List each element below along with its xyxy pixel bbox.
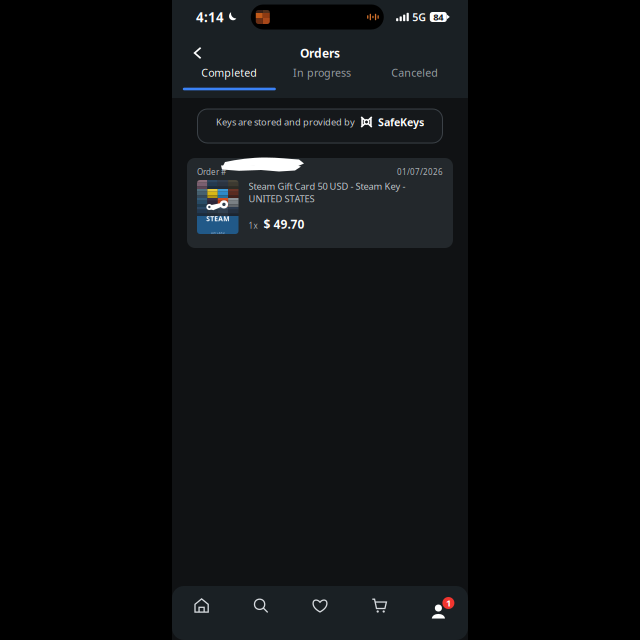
staticText: Steam Gift Card 50 USD - Steam Key - [248,180,405,192]
staticText: In progress [293,66,351,80]
staticText: STEAM [206,214,229,223]
button[interactable]: Favorites [290,586,350,640]
staticText: SafeKeys [378,115,424,129]
staticText: 1x [248,220,257,231]
button[interactable]: Keys are stored and provided by [197,109,442,143]
staticText: UNITED STATES [248,192,314,205]
staticText: Canceled [391,66,438,80]
button[interactable]: In progress [276,65,368,98]
staticText: Keys are stored and provided by [216,116,355,128]
staticText: GIFT CARD [211,231,225,235]
staticText: 01/07/2026 [397,167,443,177]
button[interactable]: Home [172,586,231,640]
button[interactable]: Canceled [368,65,461,98]
button[interactable]: Cart [350,586,409,640]
staticText: 1 [446,597,451,609]
staticText: 5G [412,10,426,24]
button[interactable]: Back [182,40,214,66]
staticText: 4:14 [196,8,224,26]
button[interactable]: Search [231,586,290,640]
staticText: 84 [433,11,443,23]
staticText: Orders [300,45,340,61]
staticText: Order # [197,167,226,177]
button[interactable]: Account [409,592,468,640]
button[interactable]: Completed [183,65,276,98]
staticText: Completed [201,66,257,80]
staticText: $ 49.70 [263,216,304,232]
button[interactable]: Order # [187,158,453,248]
